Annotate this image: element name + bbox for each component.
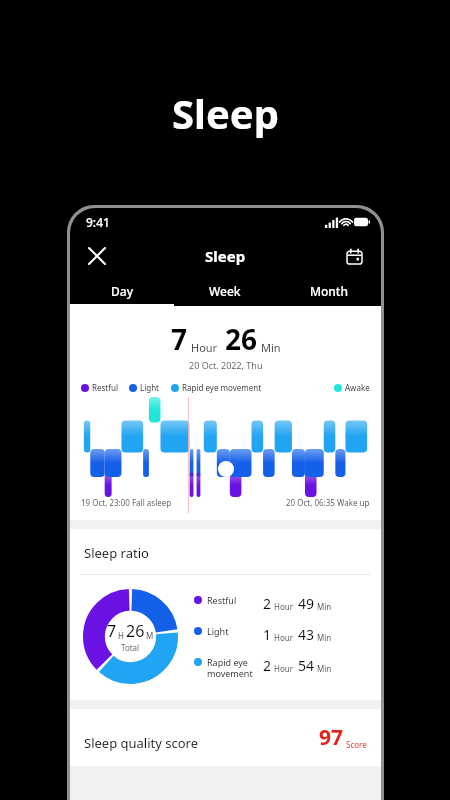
- staticText: 2: [263, 594, 272, 613]
- staticText: 26: [126, 620, 145, 642]
- staticText: Sleep: [172, 86, 279, 140]
- staticText: 43: [298, 625, 315, 644]
- staticText: 1: [263, 625, 272, 644]
- staticText: 20 Oct, 06:35 Wake up: [286, 497, 370, 508]
- staticText: Hour: [191, 340, 218, 355]
- staticText: 20 Oct. 2022, Thu: [189, 359, 263, 371]
- staticText: 7: [107, 620, 117, 642]
- staticText: H: [118, 630, 124, 641]
- button[interactable]: Month: [277, 277, 381, 304]
- staticText: Total: [121, 642, 140, 653]
- staticText: 19 Oct, 23:00 Fall asleep: [81, 497, 172, 508]
- button[interactable]: Calendar: [337, 239, 371, 273]
- staticText: Day: [111, 283, 133, 299]
- button[interactable]: Day: [70, 277, 173, 304]
- staticText: 54: [298, 656, 315, 675]
- staticText: Min: [317, 601, 332, 612]
- staticText: 9:41: [86, 214, 110, 230]
- staticText: Rapid eye movement: [207, 656, 253, 679]
- staticText: Week: [209, 283, 241, 299]
- staticText: Awake: [345, 382, 370, 393]
- staticText: Min: [317, 663, 332, 674]
- button[interactable]: Week: [173, 277, 277, 304]
- staticText: Sleep ratio: [84, 544, 149, 562]
- staticText: Rapid eye movement: [182, 382, 262, 393]
- staticText: Light: [207, 625, 229, 637]
- staticText: Hour: [274, 632, 294, 643]
- staticText: 2: [263, 656, 272, 675]
- staticText: 97: [319, 723, 344, 752]
- staticText: 26: [225, 320, 258, 358]
- staticText: Score: [346, 739, 367, 750]
- staticText: 7: [171, 320, 188, 358]
- button[interactable]: Close: [80, 239, 114, 273]
- staticText: M: [146, 630, 154, 641]
- staticText: Hour: [274, 663, 294, 674]
- staticText: Restful: [92, 382, 118, 393]
- staticText: 49: [298, 594, 315, 613]
- staticText: Hour: [274, 601, 294, 612]
- staticText: Min: [317, 632, 332, 643]
- staticText: Light: [140, 382, 160, 393]
- staticText: Restful: [207, 594, 237, 606]
- staticText: Sleep quality score: [84, 734, 199, 752]
- staticText: Month: [310, 283, 348, 299]
- staticText: Sleep: [205, 246, 246, 266]
- staticText: Min: [261, 340, 281, 355]
